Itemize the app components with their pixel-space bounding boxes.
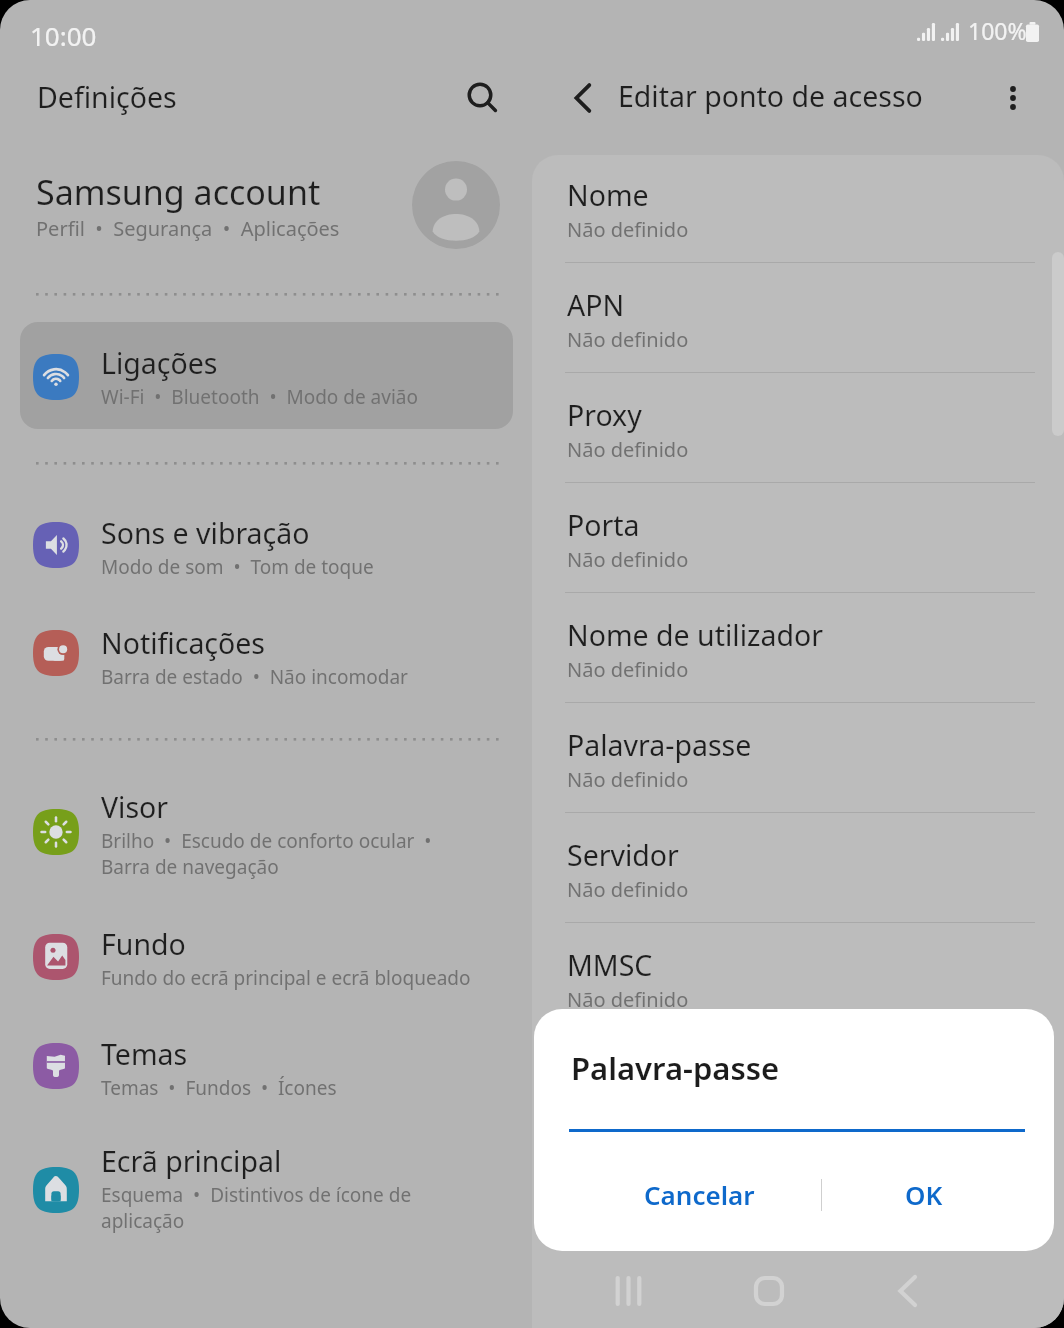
staticText: Esquema • Distintivos de ícone de aplica…	[101, 1182, 412, 1234]
staticText: Fundo do ecrã principal e ecrã bloqueado	[101, 965, 471, 991]
staticText: Ligações	[101, 344, 218, 383]
staticText: MMSC	[567, 946, 653, 985]
button[interactable]: Ecrã principal	[20, 1126, 513, 1252]
staticText: Samsung account	[36, 169, 321, 215]
staticText: Nome de utilizador	[567, 616, 823, 655]
button[interactable]: Proxy	[532, 375, 1064, 485]
staticText: Não definido	[567, 326, 689, 353]
staticText: Modo de som • Tom de toque	[101, 554, 374, 580]
staticText: Nome	[567, 176, 649, 215]
staticText: Não definido	[567, 656, 689, 683]
staticText: Cancelar	[644, 1177, 755, 1212]
staticText: Palavra-passe	[567, 726, 752, 765]
button[interactable]: OK	[840, 1163, 1008, 1225]
staticText: Ecrã principal	[101, 1142, 282, 1181]
staticText: Não definido	[567, 986, 689, 1013]
staticText: Notificações	[101, 624, 266, 663]
staticText: Não definido	[567, 876, 689, 903]
staticText: Temas	[101, 1035, 188, 1074]
staticText: Editar ponto de acesso	[618, 77, 923, 116]
button[interactable]: Servidor	[532, 815, 1064, 925]
staticText: Sons e vibração	[101, 514, 310, 553]
button[interactable]: Pesquisar	[452, 67, 508, 123]
button[interactable]: Visor	[20, 772, 513, 898]
button[interactable]: MMSC	[532, 925, 1064, 1035]
button[interactable]: Notificações	[20, 608, 513, 712]
staticText: APN	[567, 286, 625, 325]
button[interactable]: Porta	[532, 485, 1064, 595]
button[interactable]: Nome	[532, 155, 1064, 265]
staticText: OK	[905, 1177, 943, 1212]
staticText: Brilho • Escudo de conforto ocular • Bar…	[101, 828, 432, 880]
button[interactable]: Nome de utilizador	[532, 595, 1064, 705]
staticText: Fundo	[101, 925, 186, 964]
staticText: 100%	[968, 15, 1027, 46]
staticText: Visor	[101, 788, 169, 827]
button[interactable]: Voltar	[858, 1253, 958, 1328]
staticText: 10:00	[30, 18, 97, 53]
staticText: Não definido	[567, 546, 689, 573]
button[interactable]: Cancelar	[596, 1163, 802, 1225]
button[interactable]: Fundo	[20, 909, 513, 1013]
button[interactable]: Ligações	[20, 322, 513, 429]
staticText: Não definido	[567, 766, 689, 793]
button[interactable]: APN	[532, 265, 1064, 375]
staticText: Não definido	[567, 436, 689, 463]
button[interactable]: Recentes	[578, 1253, 678, 1328]
staticText: Palavra-passe	[571, 1047, 780, 1089]
staticText: Não definido	[567, 216, 689, 243]
button[interactable]: Sons e vibração	[20, 498, 513, 602]
button[interactable]: Mais opções	[985, 70, 1041, 126]
staticText: Temas • Fundos • Ícones	[101, 1075, 337, 1101]
staticText: Servidor	[567, 836, 679, 875]
button[interactable]: Início	[719, 1253, 819, 1328]
button[interactable]: Voltar	[556, 70, 612, 126]
staticText: Perfil • Segurança • Aplicações	[36, 215, 340, 242]
staticText: Barra de estado • Não incomodar	[101, 664, 408, 690]
staticText: Wi-Fi • Bluetooth • Modo de avião	[101, 384, 418, 410]
button[interactable]: MMS proxy	[532, 1035, 1064, 1145]
staticText: MMS proxy	[567, 1056, 717, 1095]
staticText: Definições	[37, 78, 177, 117]
staticText: Porta	[567, 506, 640, 545]
button[interactable]: Palavra-passe	[532, 705, 1064, 815]
button[interactable]: Temas	[20, 1019, 513, 1123]
staticText: Proxy	[567, 396, 642, 435]
button[interactable]: Samsung account	[0, 152, 532, 264]
